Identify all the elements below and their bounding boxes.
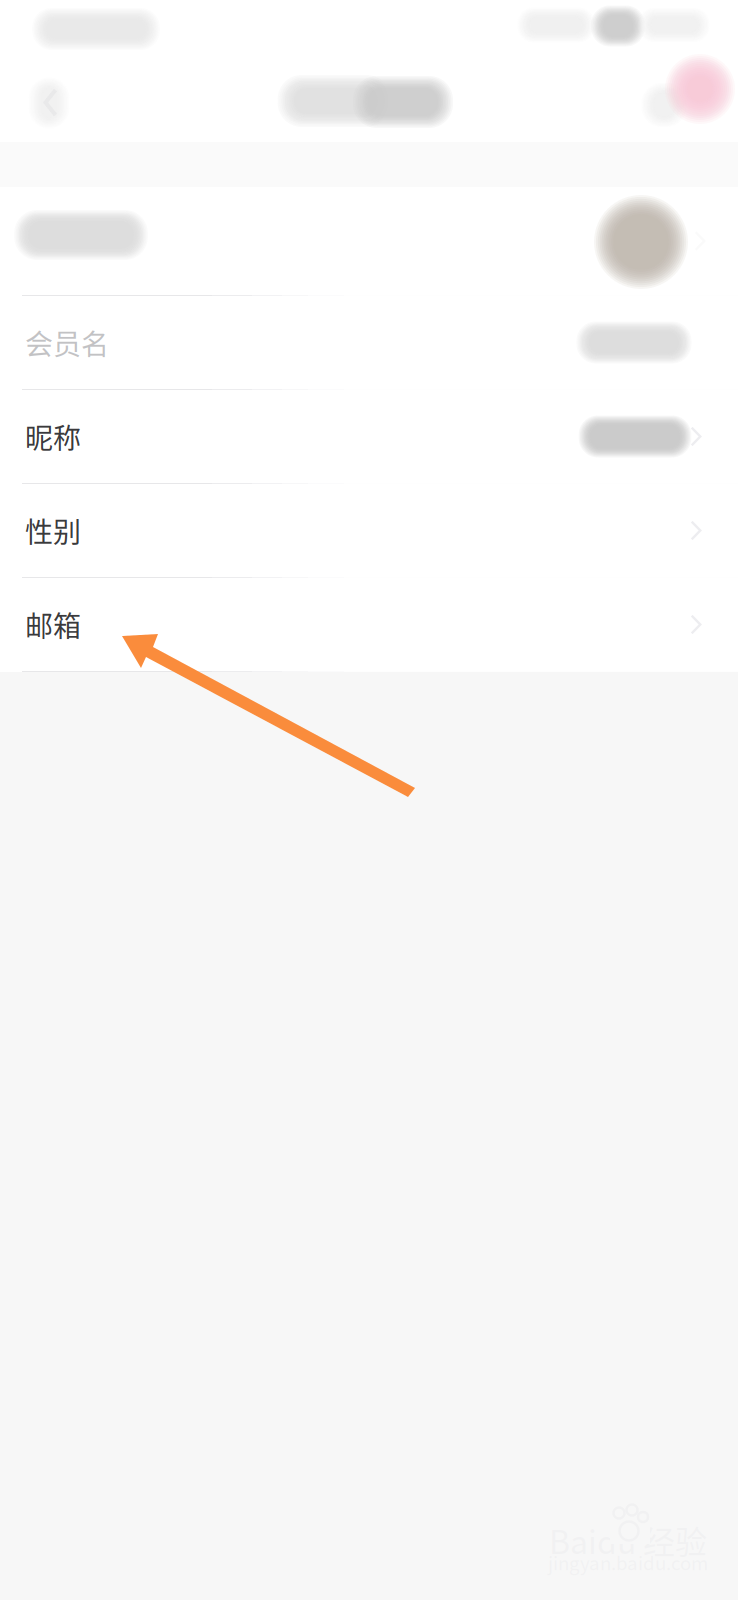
staticText: 会员名: [25, 322, 109, 363]
button[interactable]: Notifications: [0, 65, 738, 142]
button[interactable]: 性别: [0, 484, 738, 577]
staticText: 昵称: [25, 416, 81, 457]
staticText: 性别: [25, 510, 81, 551]
button[interactable]: Back: [0, 65, 110, 142]
button[interactable]: 邮箱: [0, 578, 738, 671]
staticText: 邮箱: [25, 604, 81, 645]
button[interactable]: Avatar: [0, 187, 738, 295]
button[interactable]: 会员名: [0, 296, 738, 389]
button[interactable]: 昵称: [0, 390, 738, 483]
